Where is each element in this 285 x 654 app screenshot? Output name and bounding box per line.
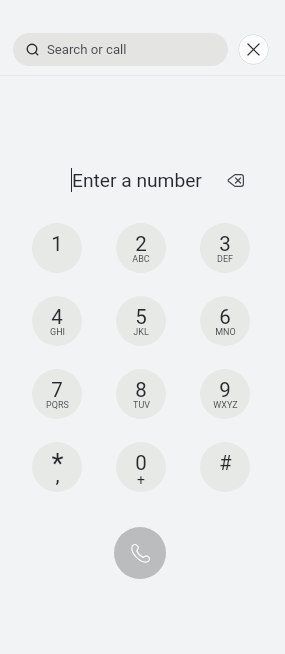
staticText: #: [219, 451, 232, 474]
staticText: 6: [219, 305, 231, 329]
staticText: DEF: [217, 254, 233, 265]
button[interactable]: 9: [200, 369, 250, 419]
button[interactable]: Call: [114, 527, 166, 579]
staticText: 5: [135, 305, 147, 329]
staticText: 0: [135, 451, 147, 475]
button[interactable]: Search or call: [13, 33, 228, 66]
staticText: +: [137, 472, 145, 488]
button[interactable]: #: [200, 442, 250, 492]
staticText: GHI: [50, 327, 65, 338]
button[interactable]: 8: [116, 369, 166, 419]
staticText: WXYZ: [213, 400, 238, 411]
button[interactable]: Backspace: [215, 162, 255, 198]
staticText: TUV: [133, 400, 150, 411]
staticText: Enter a number: [72, 169, 202, 192]
button[interactable]: 6: [200, 296, 250, 346]
button[interactable]: Close dialpad: [238, 34, 269, 65]
staticText: JKL: [133, 327, 149, 338]
button[interactable]: 1: [32, 223, 82, 273]
button[interactable]: 3: [200, 223, 250, 273]
staticText: 7: [51, 378, 63, 402]
button[interactable]: 2: [116, 223, 166, 273]
staticText: 8: [135, 378, 147, 402]
staticText: 2: [135, 232, 147, 256]
button[interactable]: 0: [116, 442, 166, 492]
button[interactable]: 4: [32, 296, 82, 346]
button[interactable]: *: [32, 442, 82, 492]
staticText: ABC: [132, 254, 150, 265]
staticText: Search or call: [47, 42, 127, 57]
staticText: 9: [219, 378, 231, 402]
staticText: 3: [219, 232, 231, 256]
staticText: 4: [51, 305, 63, 329]
staticText: 1: [51, 232, 63, 256]
button[interactable]: 7: [32, 369, 82, 419]
staticText: ,: [55, 463, 60, 488]
staticText: MNO: [215, 327, 236, 338]
staticText: PQRS: [46, 400, 69, 411]
staticText: *: [51, 447, 64, 480]
button[interactable]: 5: [116, 296, 166, 346]
